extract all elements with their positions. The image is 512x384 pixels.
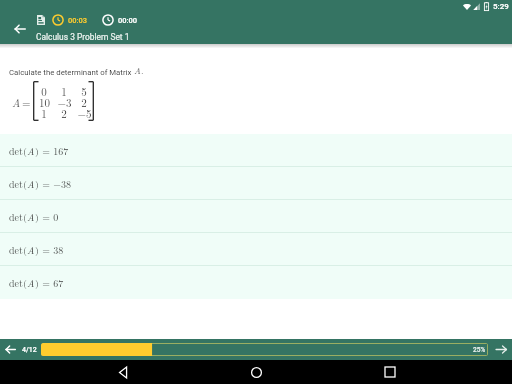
button[interactable]: Next question [490, 339, 512, 360]
staticText: det( [9, 177, 27, 191]
staticText: 2 [81, 95, 87, 111]
staticText: 0 [41, 84, 47, 100]
staticText: A [27, 177, 35, 191]
button[interactable]: Progress 25 percent [41, 343, 488, 356]
button[interactable]: Total timer [102, 14, 138, 26]
button[interactable]: det( [0, 134, 512, 167]
staticText: −5 [77, 106, 92, 122]
staticText: 25% [473, 346, 486, 354]
staticText: A [27, 243, 35, 257]
staticText: 5 [81, 84, 87, 100]
staticText: det( [9, 210, 27, 224]
button[interactable]: Back [6, 21, 34, 37]
button[interactable]: det( [0, 167, 512, 200]
staticText: ) = −38 [35, 177, 72, 191]
staticText: 10 [39, 95, 50, 111]
staticText: 1 [61, 84, 67, 100]
staticText: 4/12 [22, 346, 37, 354]
button[interactable]: Home [245, 361, 267, 383]
staticText: A [27, 276, 35, 290]
button[interactable]: Back [112, 361, 134, 383]
staticText: −3 [57, 95, 72, 111]
staticText: = [22, 95, 31, 111]
button[interactable]: Recents [379, 361, 401, 383]
staticText: Calculate the determinant of Matrix [9, 68, 134, 77]
staticText: ) = 0 [35, 210, 59, 224]
staticText: A [12, 95, 21, 111]
staticText: A. [134, 64, 144, 77]
button[interactable]: Previous question [0, 339, 21, 360]
staticText: det( [9, 276, 27, 290]
staticText: 1 [41, 106, 47, 122]
button[interactable]: det( [0, 233, 512, 266]
staticText: ) = 67 [35, 276, 64, 290]
staticText: det( [9, 243, 27, 257]
staticText: 5:29 [493, 2, 509, 11]
staticText: 2 [61, 106, 67, 122]
staticText: A [27, 210, 35, 224]
button[interactable]: det( [0, 266, 512, 299]
button[interactable]: Question timer [52, 14, 88, 26]
staticText: 00:03 [68, 16, 88, 25]
staticText: det( [9, 144, 27, 158]
staticText: A [27, 144, 35, 158]
staticText: ) = 167 [35, 144, 69, 158]
staticText: Calculus 3 Problem Set 1 [36, 32, 130, 42]
staticText: ) = 38 [35, 243, 64, 257]
staticText: 00:00 [118, 16, 138, 25]
button[interactable]: det( [0, 200, 512, 233]
